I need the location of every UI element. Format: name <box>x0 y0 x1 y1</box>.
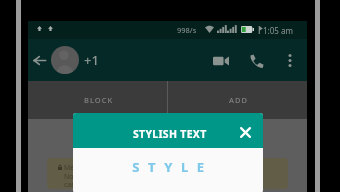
staticText: STYLE <box>132 158 213 176</box>
staticText: BLOCK <box>84 95 114 105</box>
staticText: No one outside of this chat, not even Wh… <box>64 172 223 182</box>
staticText: Messages and calls are end-to-end encryp… <box>64 163 215 173</box>
button[interactable]: Close <box>235 122 255 142</box>
button[interactable]: Video call <box>208 48 233 73</box>
button[interactable]: BLOCK <box>28 81 167 119</box>
staticText: 1:05 am <box>263 25 293 36</box>
staticText: STYLISH TEXT <box>133 127 207 141</box>
staticText: +1 <box>84 51 99 69</box>
staticText: ADD <box>229 95 248 105</box>
button[interactable]: Back <box>27 48 51 72</box>
staticText: can read or listen to them. Tap to learn… <box>64 180 213 189</box>
button[interactable]: Call <box>244 48 269 73</box>
staticText: 998/s <box>177 25 197 35</box>
button[interactable]: ADD <box>168 81 307 119</box>
button[interactable]: More options <box>277 48 302 73</box>
